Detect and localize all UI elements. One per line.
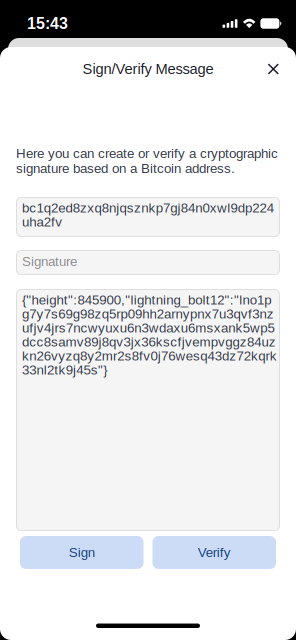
staticText: Here you can create or verify a cryptogr… — [16, 146, 278, 161]
staticText: {"height":845900,"lightning_bolt12":"lno… — [22, 293, 271, 307]
staticText: 15:43 — [27, 15, 68, 32]
staticText: g7y7s69g98zq5rp09hh2arnypnx7u3qvf3nz — [22, 307, 274, 321]
staticText: 33nl2tk9j45s"} — [22, 363, 107, 377]
staticText: Verify — [198, 545, 231, 560]
button[interactable]: Verify — [152, 536, 276, 569]
staticText: Sign — [69, 545, 95, 560]
staticText: ufjv4jrs7ncwyuxu6n3wdaxu6msxank5wp5 — [22, 321, 274, 335]
button[interactable]: Sign — [20, 536, 143, 569]
staticText: Signature — [22, 254, 77, 269]
staticText: kn26vyzq8y2mr2s8fv0j76wesq43dz72kqrk — [22, 349, 277, 363]
button[interactable]: Close — [257, 52, 290, 86]
staticText: dcc8samv89j8qv3jx36kscfjvempvggz84uz — [22, 335, 276, 349]
staticText: Sign/Verify Message — [82, 61, 213, 77]
staticText: uha2fv — [22, 215, 62, 229]
staticText: bc1q2ed8zxq8njqsznkp7gj84n0xwl9dp224 — [22, 201, 274, 215]
staticText: signature based on a Bitcoin address. — [16, 161, 235, 176]
